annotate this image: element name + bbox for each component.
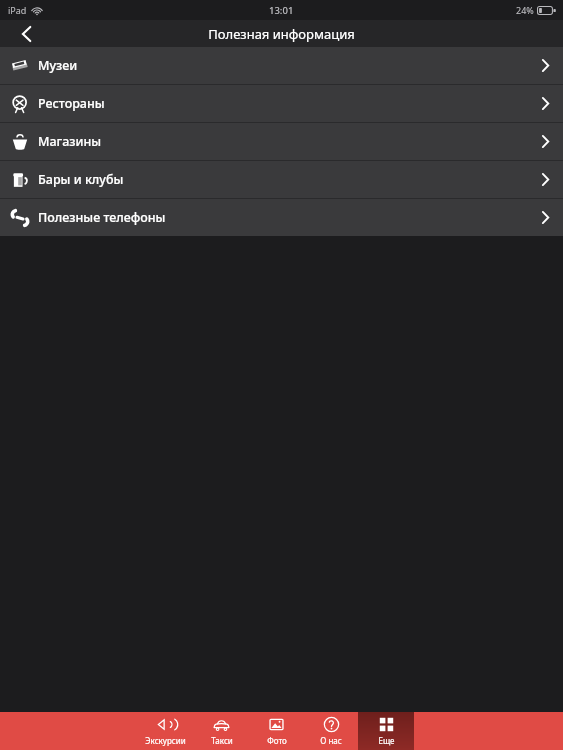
staticText: 24% [516, 4, 534, 16]
staticText: Полезная информация [208, 25, 355, 43]
staticText: Еще [378, 735, 395, 746]
button[interactable]: Рестораны [0, 85, 563, 122]
button[interactable]: Еще [358, 712, 414, 750]
button[interactable]: Такси [194, 712, 249, 750]
button[interactable]: Бары и клубы [0, 161, 563, 198]
staticText: Музеи [38, 57, 78, 74]
staticText: 13:01 [269, 4, 294, 17]
button[interactable]: Фото [249, 712, 304, 750]
button[interactable]: Полезные телефоны [0, 199, 563, 236]
button[interactable]: О нас [304, 712, 358, 750]
staticText: Магазины [38, 133, 102, 150]
staticText: Рестораны [38, 95, 105, 112]
staticText: Экскурсии [145, 735, 186, 746]
button[interactable]: Магазины [0, 123, 563, 160]
button[interactable]: Back [0, 20, 52, 47]
staticText: Полезные телефоны [38, 209, 166, 226]
button[interactable]: Музеи [0, 47, 563, 84]
staticText: iPad [8, 4, 27, 16]
staticText: Такси [211, 735, 233, 746]
staticText: О нас [320, 735, 342, 746]
staticText: Фото [267, 735, 287, 746]
staticText: Бары и клубы [38, 171, 124, 188]
button[interactable]: Экскурсии [136, 712, 194, 750]
